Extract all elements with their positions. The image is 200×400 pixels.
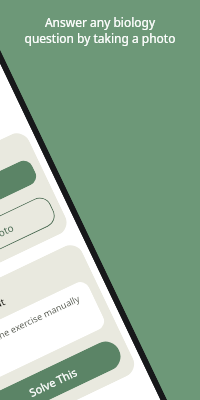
staticText: Take a photo bbox=[0, 220, 17, 259]
staticText: Answer any biology question by taking a … bbox=[0, 14, 200, 46]
staticText: Type in the exercise manually bbox=[0, 292, 82, 356]
staticText: Or type it out bbox=[0, 294, 8, 334]
button[interactable]: Solve This bbox=[0, 336, 125, 400]
button[interactable] bbox=[0, 157, 40, 245]
staticText: Solve This bbox=[27, 364, 80, 400]
button[interactable]: Take a photo bbox=[0, 193, 59, 285]
